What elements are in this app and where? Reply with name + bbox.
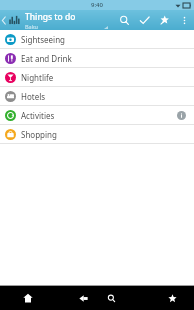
staticText: Things to do [25,11,76,23]
button[interactable]: Things to do [25,11,114,30]
staticText: Eat and Drink [21,53,72,64]
button[interactable]: Navigate up [0,10,8,30]
button[interactable]: Nightlife [0,68,194,86]
button[interactable]: Check in [134,10,154,30]
button[interactable]: Activities [0,106,194,124]
button[interactable]: Search [101,288,121,308]
button[interactable]: Information [174,108,188,122]
button[interactable]: More options [174,10,194,30]
staticText: Activities [21,110,55,121]
staticText: 9:40 [91,1,103,9]
button[interactable]: Hotels [0,87,194,105]
staticText: Shopping [21,129,57,140]
staticText: Hotels [21,91,46,102]
button[interactable]: Shopping [0,125,194,143]
staticText: Baku [25,23,38,30]
button[interactable]: Eat and Drink [0,49,194,67]
button[interactable]: Search [114,10,134,30]
button[interactable]: Sightseeing [0,30,194,48]
staticText: Sightseeing [21,34,65,45]
button[interactable]: Favorite [154,10,174,30]
button[interactable]: Home [16,286,40,310]
staticText: Nightlife [21,72,54,83]
button[interactable]: Bookmarks [162,288,182,308]
button[interactable]: Back [73,288,93,308]
